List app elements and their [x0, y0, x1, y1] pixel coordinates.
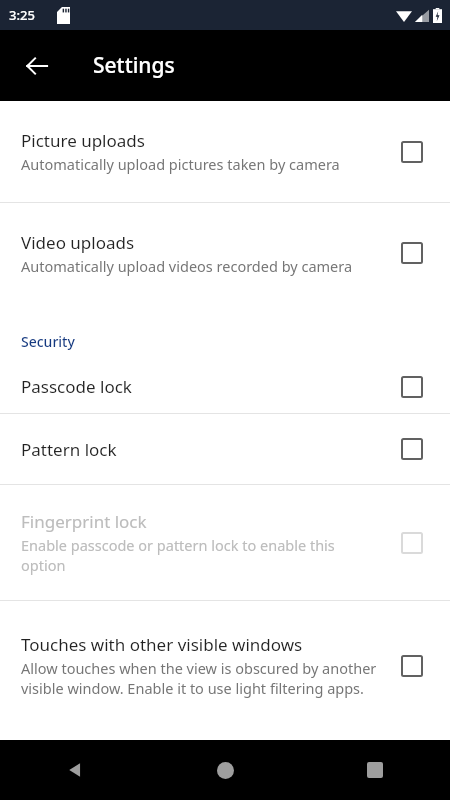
staticText: Enable passcode or pattern lock to enabl…	[21, 535, 378, 576]
staticText: Video uploads	[21, 231, 135, 254]
button[interactable]: Recent apps	[300, 740, 450, 800]
button[interactable]: Home	[150, 740, 300, 800]
button: Fingerprint lock	[0, 485, 450, 600]
staticText: Automatically upload pictures taken by c…	[21, 154, 340, 174]
staticText: 3:25	[9, 6, 35, 24]
button[interactable]: Back	[13, 42, 61, 90]
staticText: Pattern lock	[21, 438, 117, 461]
button[interactable]: Back	[0, 740, 150, 800]
button[interactable]: Passcode lock	[0, 360, 450, 413]
staticText: Automatically upload videos recorded by …	[21, 256, 353, 276]
staticText: Picture uploads	[21, 129, 145, 152]
staticText: Touches with other visible windows	[21, 633, 303, 656]
staticText: Allow touches when the view is obscured …	[21, 658, 378, 699]
staticText: Passcode lock	[21, 375, 132, 398]
button[interactable]: Picture uploads	[0, 101, 450, 202]
button[interactable]: Pattern lock	[0, 414, 450, 484]
button[interactable]: Touches with other visible windows	[0, 601, 450, 731]
staticText: Settings	[93, 51, 175, 80]
button[interactable]: Video uploads	[0, 203, 450, 303]
staticText: Security	[21, 332, 75, 351]
staticText: Fingerprint lock	[21, 510, 147, 533]
